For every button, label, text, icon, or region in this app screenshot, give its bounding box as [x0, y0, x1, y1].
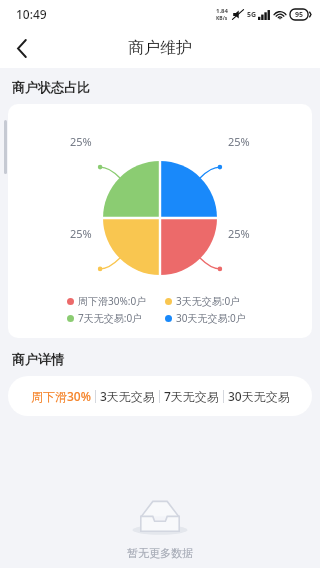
staticText: 30天无交易:0户: [176, 311, 246, 325]
staticText: 7天无交易: [164, 388, 219, 404]
button[interactable]: 周下滑30%: [27, 379, 95, 413]
staticText: 30天无交易: [228, 388, 290, 404]
staticText: 周下滑30%: [31, 388, 91, 404]
staticText: 商户维护: [128, 38, 192, 58]
staticText: 3天无交易:0户: [176, 294, 241, 308]
staticText: 3天无交易: [100, 388, 155, 404]
staticText: 10:49: [16, 6, 47, 22]
button[interactable]: 返回: [0, 28, 44, 68]
staticText: KB/s: [216, 15, 228, 22]
staticText: 25%: [70, 134, 92, 149]
staticText: 商户详情: [12, 351, 64, 367]
staticText: 25%: [228, 134, 250, 149]
staticText: 7天无交易:0户: [78, 311, 143, 325]
button[interactable]: 7天无交易: [160, 379, 223, 413]
button[interactable]: 30天无交易: [224, 379, 294, 413]
staticText: 1.84: [216, 7, 228, 15]
staticText: 周下滑30%:0户: [78, 294, 147, 308]
staticText: 25%: [70, 226, 92, 241]
staticText: 95: [295, 10, 304, 20]
staticText: 5G: [247, 10, 257, 20]
staticText: 25%: [228, 226, 250, 241]
button[interactable]: 3天无交易: [96, 379, 159, 413]
staticText: 商户状态占比: [12, 79, 90, 95]
staticText: 暂无更多数据: [0, 546, 320, 560]
